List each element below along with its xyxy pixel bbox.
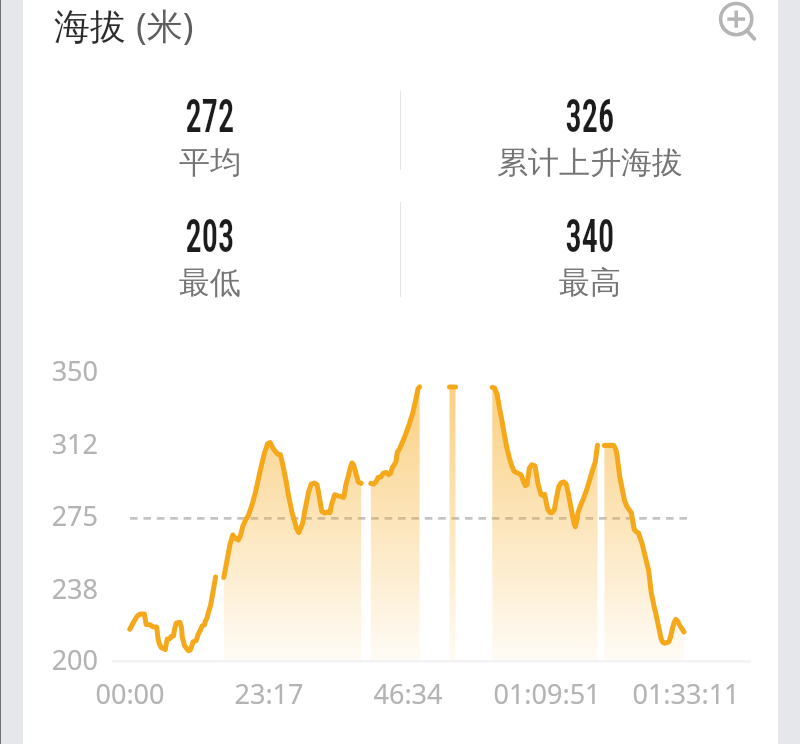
staticText: 238 (51, 570, 98, 607)
staticText: 累计上升海拔 (497, 143, 683, 182)
button[interactable]: 203 (0, 209, 420, 314)
button[interactable]: 272 (0, 89, 420, 194)
button[interactable]: Zoom in (710, 0, 762, 52)
staticText: 326 (565, 89, 614, 143)
staticText: 最高 (559, 263, 621, 302)
staticText: 340 (565, 209, 614, 263)
staticText: 46:34 (373, 675, 443, 712)
staticText: 350 (51, 352, 98, 389)
staticText: 275 (51, 497, 98, 534)
staticText: 312 (51, 425, 98, 462)
staticText: (米) (136, 1, 194, 50)
button[interactable]: 326 (380, 89, 800, 194)
staticText: 海拔 (54, 1, 136, 50)
staticText: 01:09:51 (493, 675, 601, 712)
button[interactable]: 340 (380, 209, 800, 314)
staticText: 200 (51, 641, 98, 678)
staticText: 00:00 (95, 675, 165, 712)
staticText: 23:17 (234, 675, 304, 712)
staticText: 203 (185, 209, 234, 263)
staticText: 平均 (179, 143, 241, 182)
staticText: 272 (185, 89, 234, 143)
staticText: 最低 (179, 263, 241, 302)
staticText: 01:33:11 (632, 675, 740, 712)
